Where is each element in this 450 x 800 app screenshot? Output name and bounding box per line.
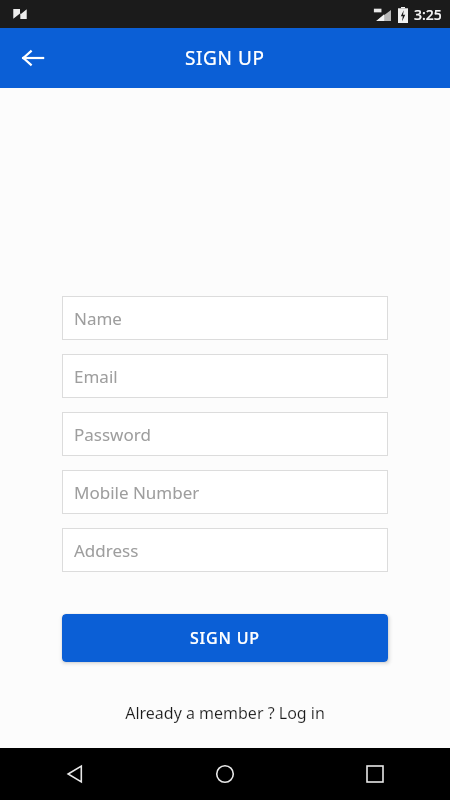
button[interactable]: Mobile Number <box>62 470 388 514</box>
button[interactable]: Name <box>62 296 388 340</box>
staticText: 3:25 <box>414 5 442 24</box>
button[interactable]: Password <box>62 412 388 456</box>
staticText: Name <box>74 307 122 330</box>
button[interactable]: Back <box>10 35 56 81</box>
button[interactable]: Email <box>62 354 388 398</box>
staticText: Mobile Number <box>74 481 200 504</box>
button[interactable]: Address <box>62 528 388 572</box>
button[interactable]: Back <box>0 748 150 800</box>
button[interactable]: Recent apps <box>300 748 450 800</box>
staticText: SIGN UP <box>185 45 265 71</box>
button[interactable]: SIGN UP <box>62 614 388 662</box>
staticText: Address <box>74 539 139 562</box>
staticText: Password <box>74 423 151 446</box>
button[interactable]: Home <box>150 748 300 800</box>
staticText: SIGN UP <box>190 627 260 649</box>
button[interactable]: Already a member ? Log in <box>0 702 450 724</box>
staticText: Email <box>74 365 118 388</box>
